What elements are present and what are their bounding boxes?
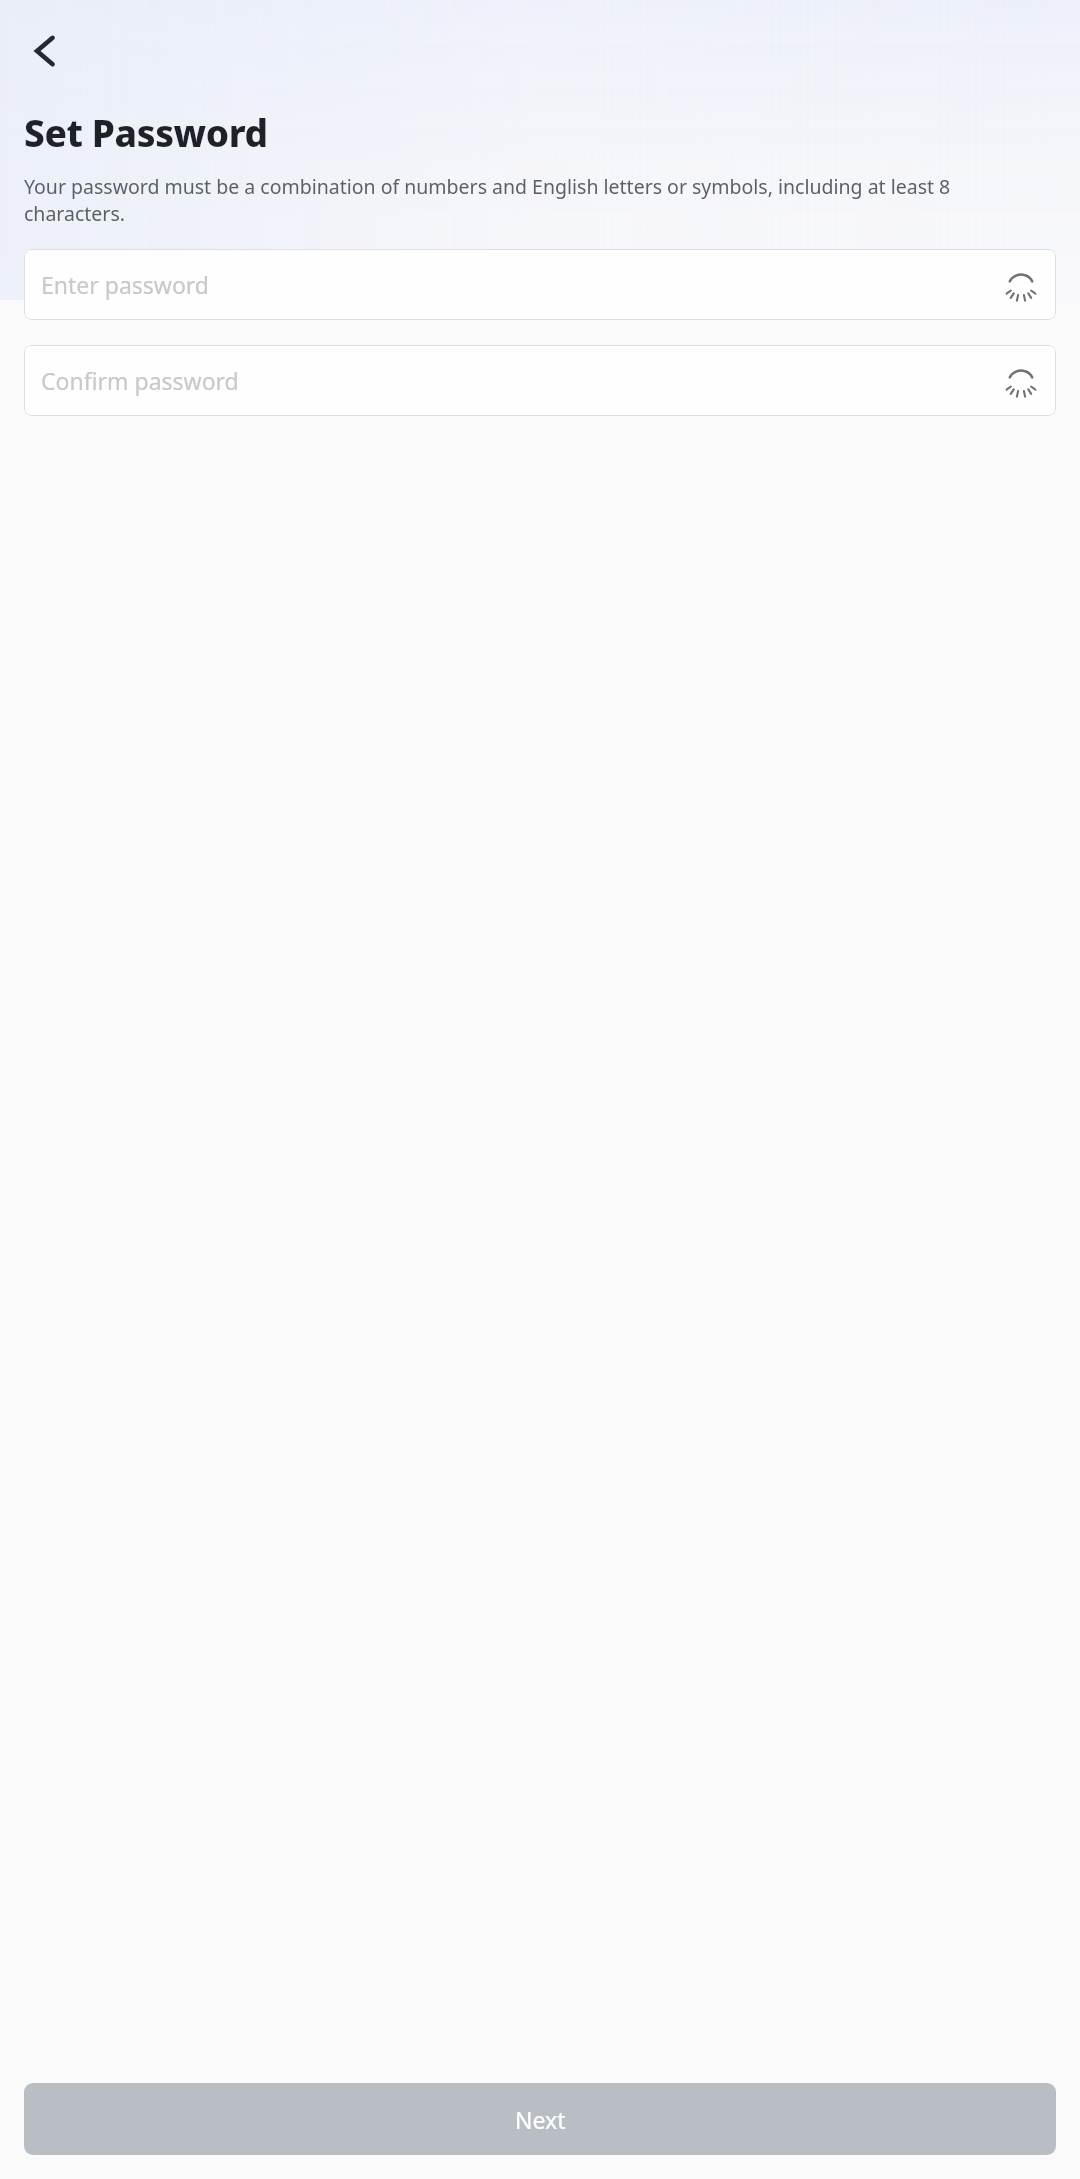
staticText: Confirm password (41, 365, 993, 396)
staticText: Your password must be a combination of n… (24, 173, 1056, 227)
button[interactable]: Confirm password (24, 345, 1056, 416)
staticText: Set Password (24, 107, 268, 157)
staticText: Enter password (41, 269, 993, 300)
button[interactable]: Show password (993, 257, 1049, 313)
button[interactable]: Next (24, 2083, 1056, 2155)
staticText: Next (515, 2104, 566, 2135)
button[interactable]: Back (12, 17, 80, 85)
button[interactable]: Show password (993, 353, 1049, 409)
button[interactable]: Enter password (24, 249, 1056, 320)
